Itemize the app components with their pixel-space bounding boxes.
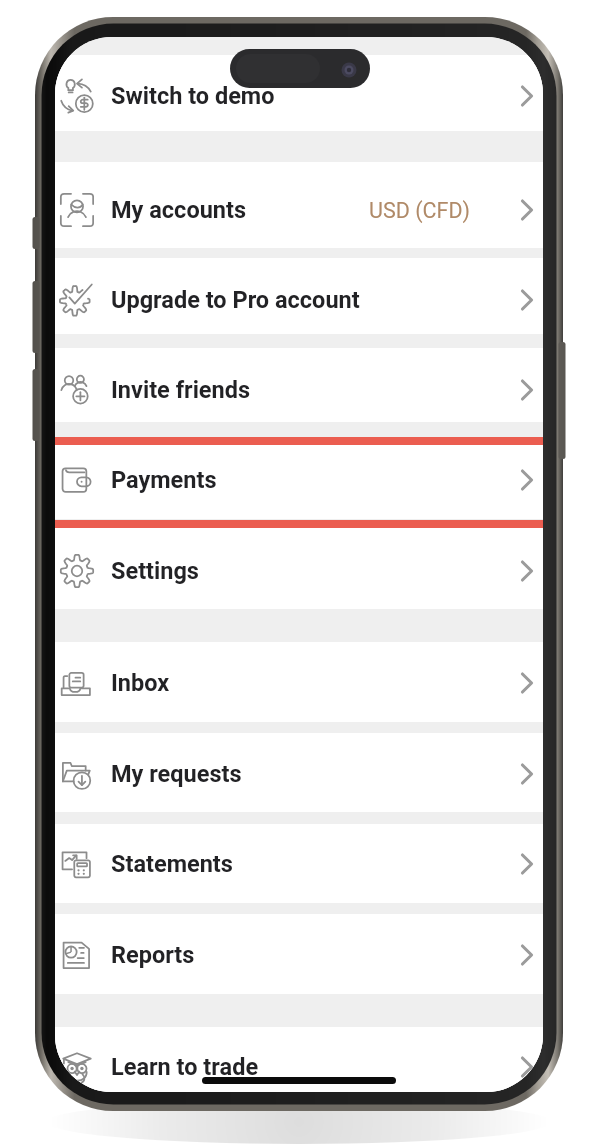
button[interactable]: Statements [55,836,543,892]
button[interactable]: Payments [55,452,543,508]
staticText: My accounts [111,196,247,224]
staticText: Statements [111,850,233,878]
button[interactable]: Learn to trade [55,1039,543,1092]
button[interactable]: My requests [55,746,543,802]
button[interactable]: Inbox [55,655,543,711]
staticText: USD (CFD) [369,198,470,223]
button[interactable]: Settings [55,543,543,599]
staticText: Settings [111,557,199,585]
staticText: My requests [111,760,242,788]
staticText: Learn to trade [111,1053,259,1081]
staticText: Reports [111,941,195,969]
button[interactable]: Switch to demo [55,68,543,124]
staticText: Switch to demo [111,82,275,110]
staticText: Payments [111,466,217,494]
button[interactable]: Upgrade to Pro account [55,272,543,328]
staticText: Invite friends [111,376,251,404]
staticText: Upgrade to Pro account [111,286,360,314]
button[interactable]: Invite friends [55,362,543,418]
button[interactable]: Reports [55,927,543,983]
button[interactable]: My accounts [55,182,543,238]
staticText: Inbox [111,669,170,697]
